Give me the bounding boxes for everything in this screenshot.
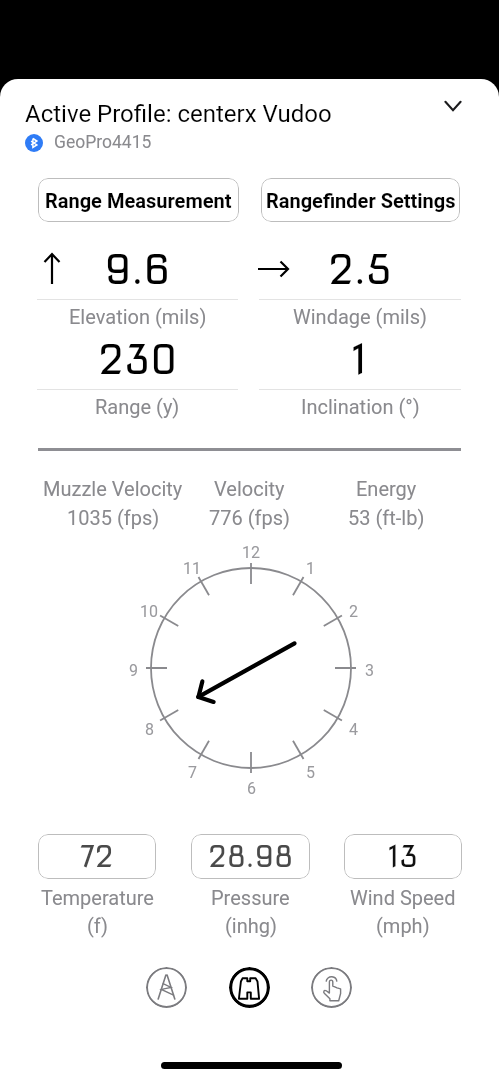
- staticText: 72: [80, 839, 114, 874]
- staticText: 13: [389, 839, 418, 874]
- button[interactable]: 28.98: [191, 834, 310, 879]
- staticText: 2: [349, 602, 358, 621]
- staticText: Windage (mils): [293, 305, 428, 328]
- staticText: Energy: [356, 477, 417, 500]
- button[interactable]: Rangefinder: [229, 967, 270, 1008]
- staticText: GeoPro4415: [54, 132, 152, 153]
- button[interactable]: 72: [38, 834, 156, 879]
- staticText: (inhg): [225, 914, 277, 937]
- button[interactable]: Ballistic calculator: [146, 967, 187, 1008]
- button[interactable]: Range Measurement: [38, 178, 239, 222]
- staticText: Range Measurement: [45, 189, 232, 212]
- staticText: Active Profile: centerx Vudoo: [25, 100, 332, 128]
- staticText: 11: [183, 559, 201, 578]
- button[interactable]: Touch target: [311, 967, 352, 1008]
- staticText: Rangefinder Settings: [266, 189, 456, 212]
- staticText: (f): [87, 914, 108, 937]
- staticText: 9: [129, 661, 138, 680]
- staticText: Velocity: [214, 477, 285, 500]
- staticText: 1: [306, 559, 315, 578]
- staticText: Inclination (°): [301, 395, 420, 418]
- staticText: 1035 (fps): [67, 506, 160, 529]
- staticText: 10: [140, 602, 158, 621]
- staticText: 5: [306, 763, 315, 782]
- staticText: Muzzle Velocity: [43, 477, 183, 500]
- staticText: 2.5: [328, 246, 392, 294]
- staticText: Range (y): [95, 395, 180, 418]
- staticText: 53 (ft-lb): [348, 506, 425, 529]
- staticText: 776 (fps): [209, 506, 290, 529]
- staticText: Temperature: [41, 886, 154, 909]
- staticText: 28.98: [208, 839, 294, 874]
- staticText: 4: [349, 720, 358, 739]
- staticText: 12: [242, 543, 260, 562]
- staticText: 7: [188, 763, 197, 782]
- staticText: 3: [365, 661, 374, 680]
- staticText: 9.6: [104, 246, 171, 294]
- staticText: Pressure: [211, 886, 290, 909]
- button[interactable]: Collapse profile: [433, 86, 473, 126]
- button[interactable]: Rangefinder Settings: [261, 178, 460, 222]
- staticText: 230: [98, 336, 178, 384]
- staticText: 1: [353, 336, 367, 384]
- staticText: (mph): [376, 914, 430, 937]
- staticText: Wind Speed: [350, 886, 456, 909]
- staticText: Elevation (mils): [69, 305, 207, 328]
- staticText: 8: [145, 720, 154, 739]
- button[interactable]: 13: [344, 834, 462, 879]
- staticText: 6: [247, 779, 256, 798]
